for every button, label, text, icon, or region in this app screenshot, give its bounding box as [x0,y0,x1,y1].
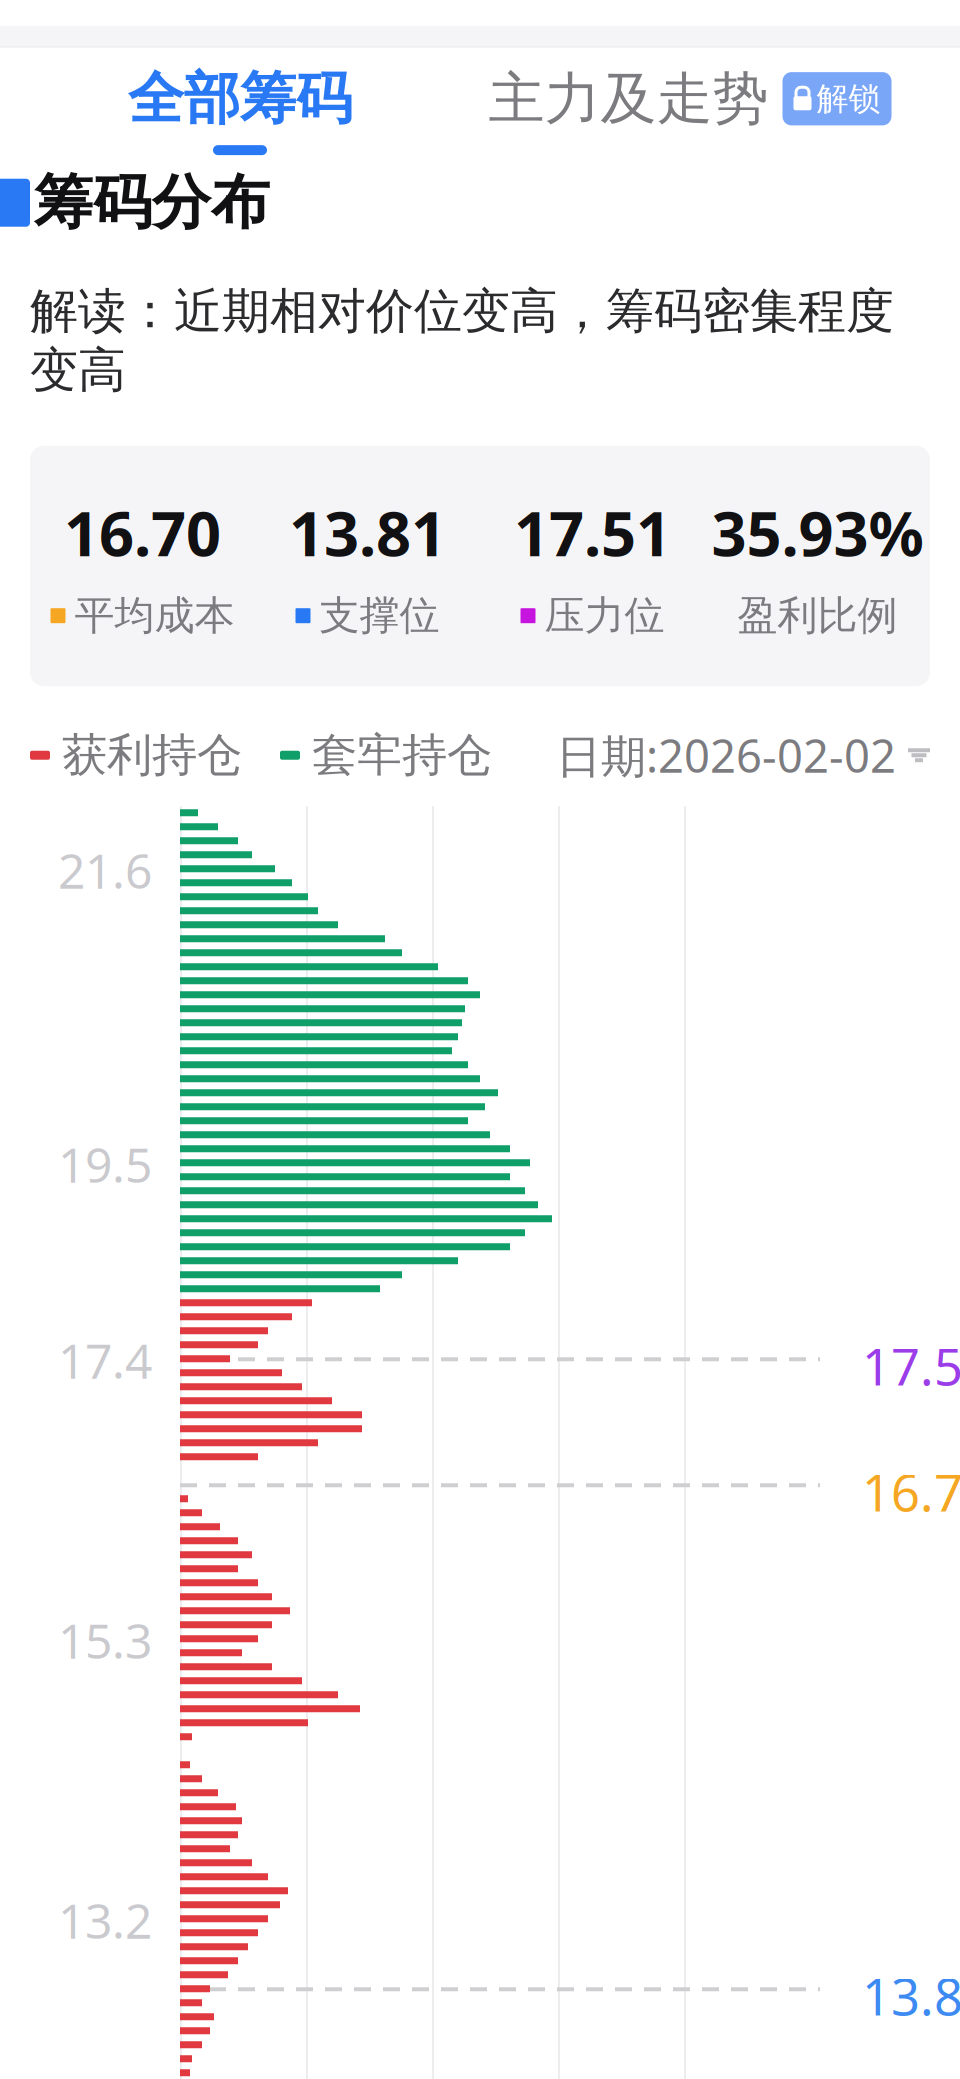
staticText: 15.3 [58,1608,152,1672]
staticText: 13.81 [862,1962,960,2029]
staticText: 35.93% [711,492,923,573]
button[interactable]: 全部筹码 [30,51,450,169]
staticText: 21.6 [58,838,152,902]
staticText: 解锁 [816,79,880,118]
staticText: 17.4 [58,1328,152,1392]
staticText: 17.51 [514,492,671,573]
staticText: 日期:2026-02-02 [556,725,896,785]
staticText: 13.2 [58,1888,152,1952]
staticText: 主力及走势 [488,64,768,133]
staticText: 16.70 [64,492,221,573]
staticText: 全部筹码 [128,64,352,133]
staticText: 压力位 [544,591,664,640]
staticText: 获利持仓 [62,727,242,783]
button[interactable]: 主力及走势 [450,51,930,169]
staticText: 16.70 [862,1458,960,1525]
staticText: 支撑位 [319,591,439,640]
button[interactable]: 日期:2026-02-02 [556,719,930,791]
staticText: 套牢持仓 [312,727,492,783]
staticText: 17.51 [862,1332,960,1399]
staticText: 13.81 [289,492,446,573]
staticText: 19.5 [58,1132,152,1196]
staticText: 解读：近期相对价位变高，筹码密集程度变高 [30,282,894,400]
staticText: 筹码分布 [34,167,270,239]
staticText: 盈利比例 [737,591,897,640]
staticText: 平均成本 [74,591,234,640]
